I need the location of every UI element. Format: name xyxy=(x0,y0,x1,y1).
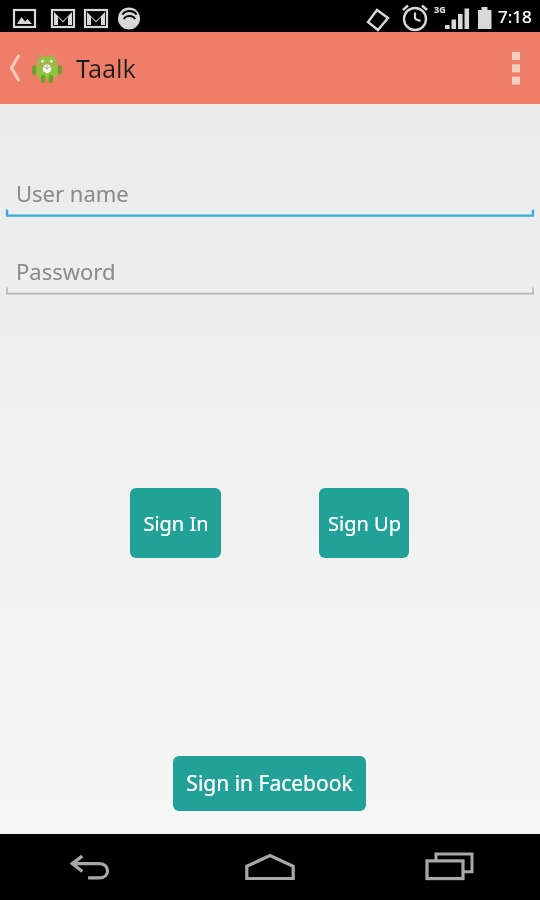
staticText: Taalk xyxy=(76,51,136,85)
staticText: User name xyxy=(16,178,129,208)
button[interactable]: Password xyxy=(6,252,534,290)
staticText: Sign In xyxy=(143,510,209,537)
button[interactable]: Sign in Facebook xyxy=(173,756,366,811)
button[interactable]: Sign In xyxy=(130,488,221,558)
button[interactable]: Sign Up xyxy=(319,488,409,558)
button[interactable]: Recent apps xyxy=(360,834,540,900)
button[interactable]: Back xyxy=(4,46,28,90)
staticText: Sign Up xyxy=(328,510,401,537)
staticText: Sign in Facebook xyxy=(186,769,353,798)
button[interactable]: More options xyxy=(492,40,540,96)
staticText: Password xyxy=(16,256,116,286)
button[interactable]: Home xyxy=(180,834,360,900)
button[interactable]: Back xyxy=(0,834,180,900)
staticText: 3G xyxy=(434,3,446,15)
button[interactable]: User name xyxy=(6,174,534,212)
staticText: 7:18 xyxy=(498,5,532,28)
